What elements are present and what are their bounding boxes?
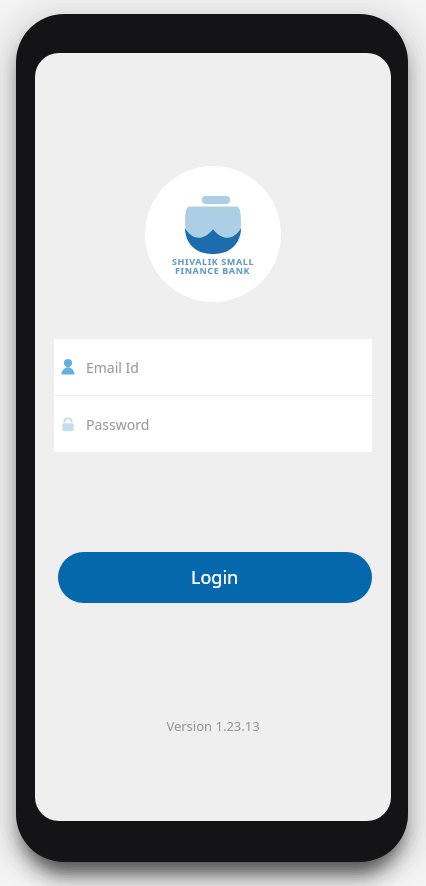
staticText: SHIVALIK SMALL (172, 255, 255, 267)
button[interactable]: Email address (54, 339, 372, 395)
staticText: Password (86, 415, 150, 434)
staticText: Login (191, 565, 239, 590)
staticText: FINANCE BANK (175, 264, 251, 276)
staticText: Version 1.23.13 (35, 717, 391, 735)
staticText: Email Id (86, 358, 139, 377)
button[interactable]: Login (58, 552, 372, 603)
button[interactable]: Password (54, 396, 372, 452)
other: Email address (59, 358, 77, 376)
other: Password (59, 415, 77, 433)
